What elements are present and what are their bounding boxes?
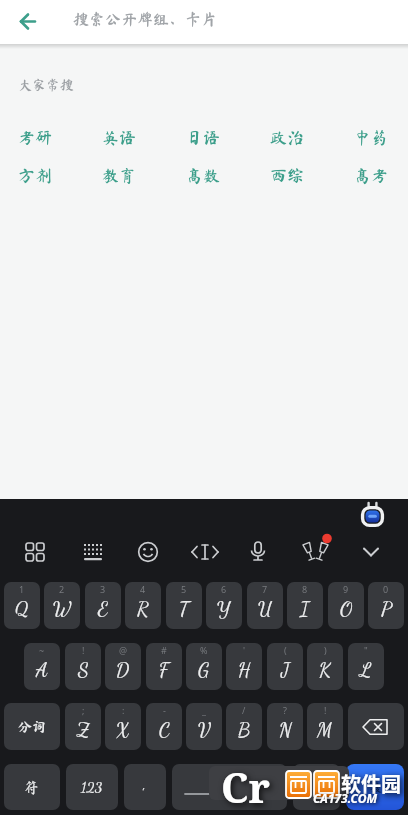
staticText: V [198, 718, 211, 742]
button[interactable]: 英语 [96, 122, 142, 152]
staticText: 搜索公开牌组、卡片 [73, 11, 218, 27]
staticText: ( [284, 644, 287, 656]
button[interactable]: 教育 [96, 160, 142, 190]
staticText: @ [119, 644, 128, 656]
button[interactable]: _ [186, 703, 222, 750]
staticText: S [78, 658, 89, 682]
button[interactable]: - [146, 703, 182, 750]
button[interactable]: ) [307, 643, 343, 690]
staticText: 0 [383, 583, 389, 595]
button[interactable] [172, 764, 287, 810]
staticText: 123 [81, 778, 103, 796]
button[interactable]: 123 [66, 764, 118, 810]
staticText: ? [283, 704, 287, 716]
button[interactable]: 6 [206, 582, 242, 629]
staticText: 大家常搜 [18, 78, 74, 92]
staticText: C [159, 718, 170, 742]
button[interactable] [348, 703, 404, 750]
button[interactable]: 搜索公开牌组、卡片 [0, 0, 408, 44]
button[interactable]: ! [65, 643, 101, 690]
staticText: Cr [221, 759, 270, 815]
staticText: # [161, 644, 167, 656]
button[interactable]: 中药 [348, 122, 394, 152]
staticText: 4 [140, 583, 146, 595]
staticText: Y [217, 597, 231, 621]
staticText: D [116, 658, 130, 682]
button[interactable]: ? [267, 703, 303, 750]
button[interactable]: , [124, 764, 166, 810]
staticText: ; [82, 704, 85, 716]
staticText: % [200, 644, 208, 656]
button[interactable]: 8 [287, 582, 323, 629]
button[interactable]: 1 [4, 582, 40, 629]
button[interactable]: % [186, 643, 222, 690]
staticText: ~ [39, 644, 45, 656]
staticText: ! [324, 704, 327, 716]
button[interactable]: : [105, 703, 141, 750]
staticText: / [242, 704, 246, 716]
staticText: , [143, 774, 147, 793]
staticText: W [53, 597, 72, 621]
staticText: 9 [343, 583, 349, 595]
staticText: I [300, 597, 310, 621]
staticText: K [319, 658, 331, 682]
staticText: X [116, 718, 130, 742]
button[interactable]: 政治 [264, 122, 310, 152]
staticText: 3 [100, 583, 106, 595]
button[interactable]: 西综 [264, 160, 310, 190]
staticText: 1 [19, 583, 25, 595]
staticText: 英语 [102, 129, 136, 146]
button[interactable]: / [226, 703, 262, 750]
staticText: L [360, 658, 372, 682]
staticText: - [163, 704, 166, 716]
button[interactable]: 搜索 [346, 764, 404, 810]
staticText: O [340, 597, 353, 621]
staticText: 高数 [186, 167, 220, 184]
button[interactable] [293, 764, 340, 810]
staticText: 5 [181, 583, 187, 595]
staticText: F [159, 658, 169, 682]
staticText: R [137, 597, 149, 621]
button[interactable]: 考研 [12, 122, 58, 152]
staticText: A [36, 658, 48, 682]
button[interactable]: 5 [166, 582, 202, 629]
button[interactable]: 方剂 [12, 160, 58, 190]
staticText: 搜索 [370, 781, 395, 793]
staticText: 8 [302, 583, 308, 595]
button[interactable]: ~ [24, 643, 60, 690]
staticText: " [364, 644, 368, 656]
staticText: B [238, 718, 251, 742]
staticText: _ [202, 704, 206, 716]
button[interactable]: 4 [125, 582, 161, 629]
button[interactable]: 高考 [348, 160, 394, 190]
staticText: : [122, 704, 125, 716]
staticText: P [381, 597, 392, 621]
button[interactable]: @ [105, 643, 141, 690]
button[interactable]: 2 [44, 582, 80, 629]
staticText: 教育 [102, 167, 136, 184]
button[interactable]: ! [307, 703, 343, 750]
button[interactable]: ' [226, 643, 262, 690]
button[interactable]: # [146, 643, 182, 690]
staticText: CA173.COM [313, 790, 378, 806]
staticText: Z [77, 718, 90, 742]
staticText: G [198, 658, 210, 682]
button[interactable]: 高数 [180, 160, 226, 190]
button[interactable]: 3 [85, 582, 121, 629]
button[interactable]: 0 [368, 582, 404, 629]
staticText: 高考 [354, 167, 388, 184]
staticText: E [98, 597, 108, 621]
staticText: 考研 [18, 129, 52, 146]
button[interactable]: " [348, 643, 384, 690]
button[interactable]: 分词 [4, 703, 60, 750]
button[interactable]: ( [267, 643, 303, 690]
staticText: T [179, 597, 189, 621]
staticText: N [279, 718, 292, 742]
button[interactable]: ; [65, 703, 101, 750]
staticText: 西综 [270, 167, 304, 184]
button[interactable]: 9 [328, 582, 364, 629]
staticText: 7 [262, 583, 268, 595]
button[interactable]: 符 [4, 764, 60, 810]
button[interactable]: 7 [247, 582, 283, 629]
button[interactable]: 日语 [180, 122, 226, 152]
